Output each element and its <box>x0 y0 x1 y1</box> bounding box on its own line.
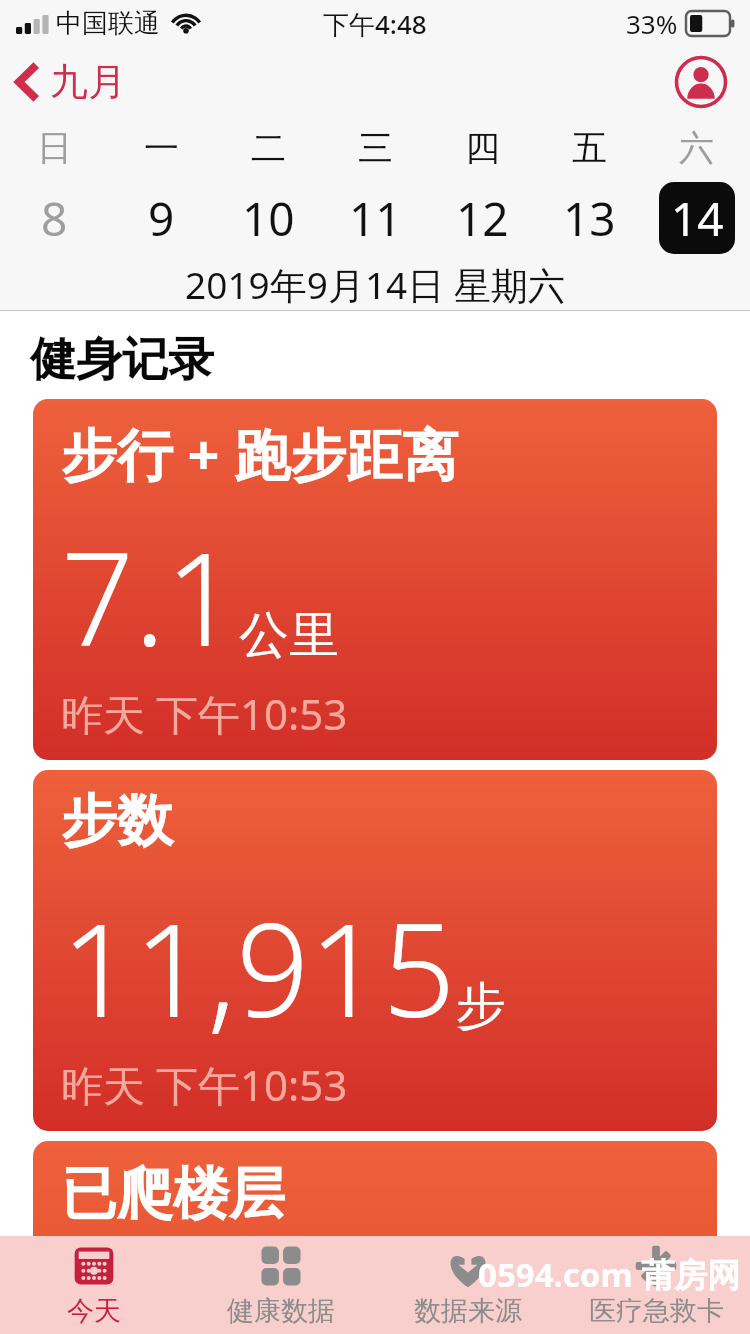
staticText: 10 <box>242 187 295 250</box>
staticText: 健康数据 <box>227 1294 335 1328</box>
staticText: 8 <box>41 187 68 250</box>
staticText: 健身记录 <box>30 331 214 389</box>
staticText: 14 <box>671 187 724 250</box>
staticText: 日 <box>37 126 72 170</box>
staticText: 9 <box>148 187 175 250</box>
button[interactable]: 11 <box>322 179 429 257</box>
button[interactable]: 健康数据 <box>187 1236 374 1334</box>
button[interactable]: 九月 <box>0 50 144 114</box>
button[interactable]: 9 <box>108 179 215 257</box>
staticText: 昨天 下午10:53 <box>61 1056 348 1113</box>
staticText: 四 <box>465 126 500 170</box>
button[interactable]: 12 <box>429 179 536 257</box>
staticText: 步数 <box>61 786 173 857</box>
button[interactable]: 8 <box>0 179 108 257</box>
button[interactable]: 14 <box>643 179 750 257</box>
staticText: 13 <box>563 187 616 250</box>
staticText: 公里 <box>239 604 339 667</box>
staticText: 三 <box>358 126 393 170</box>
button[interactable]: 13 <box>536 179 643 257</box>
staticText: 医疗急救卡 <box>589 1294 724 1328</box>
staticText: 数据来源 <box>414 1294 522 1328</box>
staticText: 11 <box>349 187 402 250</box>
staticText: 中国联通 <box>56 7 160 40</box>
button[interactable]: 10 <box>215 179 322 257</box>
button[interactable]: 步数 <box>33 770 717 1131</box>
button[interactable]: 已爬楼层 <box>33 1141 717 1331</box>
staticText: 五 <box>572 126 607 170</box>
staticText: 下午4:48 <box>323 6 427 42</box>
button[interactable]: 步行 + 跑步距离 <box>33 399 717 760</box>
staticText: 7.1 <box>61 509 239 683</box>
staticText: 昨天 下午10:53 <box>61 685 348 742</box>
staticText: 0594.com 莆房网 <box>478 1252 741 1297</box>
staticText: 二 <box>251 126 286 170</box>
staticText: 2019年9月14日 星期六 <box>0 259 750 310</box>
button[interactable]: 今天 <box>0 1236 187 1334</box>
staticText: 33% <box>626 6 678 41</box>
staticText: 六 <box>679 126 714 170</box>
button[interactable]: 医疗急救卡 <box>562 1236 750 1334</box>
staticText: 步 <box>456 975 506 1038</box>
button[interactable]: 数据来源 <box>374 1236 562 1334</box>
staticText: 已爬楼层 <box>61 1159 285 1230</box>
staticText: 今天 <box>67 1294 121 1328</box>
staticText: 12 <box>456 187 509 250</box>
staticText: 九月 <box>50 58 126 106</box>
staticText: 一 <box>144 126 179 170</box>
staticText: 步行 + 跑步距离 <box>61 415 459 491</box>
staticText: 11,915 <box>61 880 456 1054</box>
button[interactable]: Profile <box>674 55 728 109</box>
